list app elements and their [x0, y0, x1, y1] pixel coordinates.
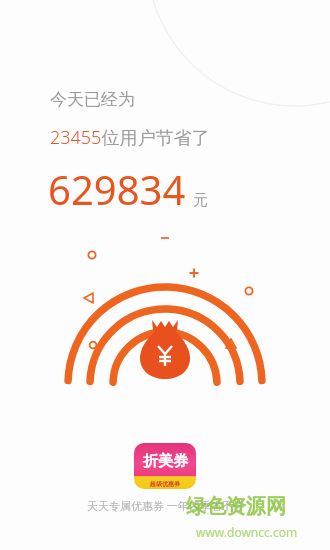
- button[interactable]: 折美券 App Logo: [134, 443, 196, 489]
- staticText: 629834 元: [48, 162, 209, 216]
- staticText: 绿色资源网: [186, 494, 286, 519]
- staticText: 超级优惠券: [150, 480, 180, 488]
- staticText: 23455位用户节省了: [50, 125, 210, 150]
- staticText: 今天已经为: [50, 89, 135, 110]
- staticText: 天天专属优惠券 一年四季省不停: [87, 498, 244, 513]
- staticText: 折美券: [143, 452, 188, 471]
- staticText: www.downcc.com: [196, 524, 298, 540]
